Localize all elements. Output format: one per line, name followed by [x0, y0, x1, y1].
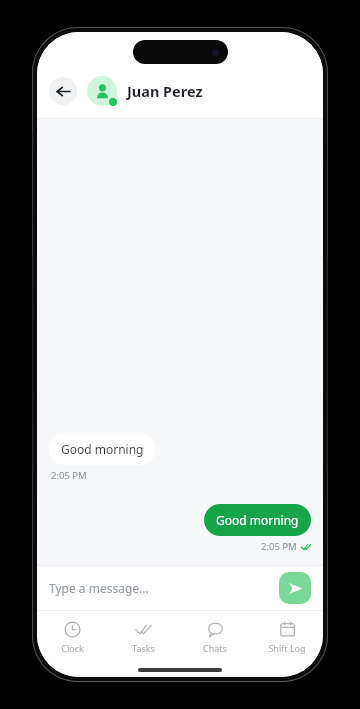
button[interactable]: Type a message... — [49, 566, 279, 610]
button[interactable]: Clock — [37, 611, 108, 663]
staticText: Tasks — [132, 642, 155, 654]
button[interactable]: Tasks — [108, 611, 179, 663]
staticText: Type a message... — [49, 580, 149, 596]
button[interactable]: Send — [279, 572, 311, 604]
button[interactable]: Contact avatar — [87, 76, 117, 106]
staticText: Clock — [61, 642, 84, 654]
staticText: Shift Log — [268, 642, 306, 654]
button[interactable]: Shift Log — [251, 611, 323, 663]
button[interactable]: Chats — [179, 611, 251, 663]
staticText: 2:05 PM — [51, 469, 87, 482]
staticText: 2:05 PM — [261, 540, 297, 553]
staticText: Juan Perez — [127, 81, 203, 101]
staticText: Good morning — [61, 441, 144, 457]
staticText: Good morning — [216, 512, 299, 528]
button[interactable]: Back — [49, 77, 77, 105]
staticText: Chats — [203, 642, 227, 654]
button[interactable]: Good morning — [49, 433, 156, 465]
button[interactable]: Good morning — [204, 504, 311, 536]
